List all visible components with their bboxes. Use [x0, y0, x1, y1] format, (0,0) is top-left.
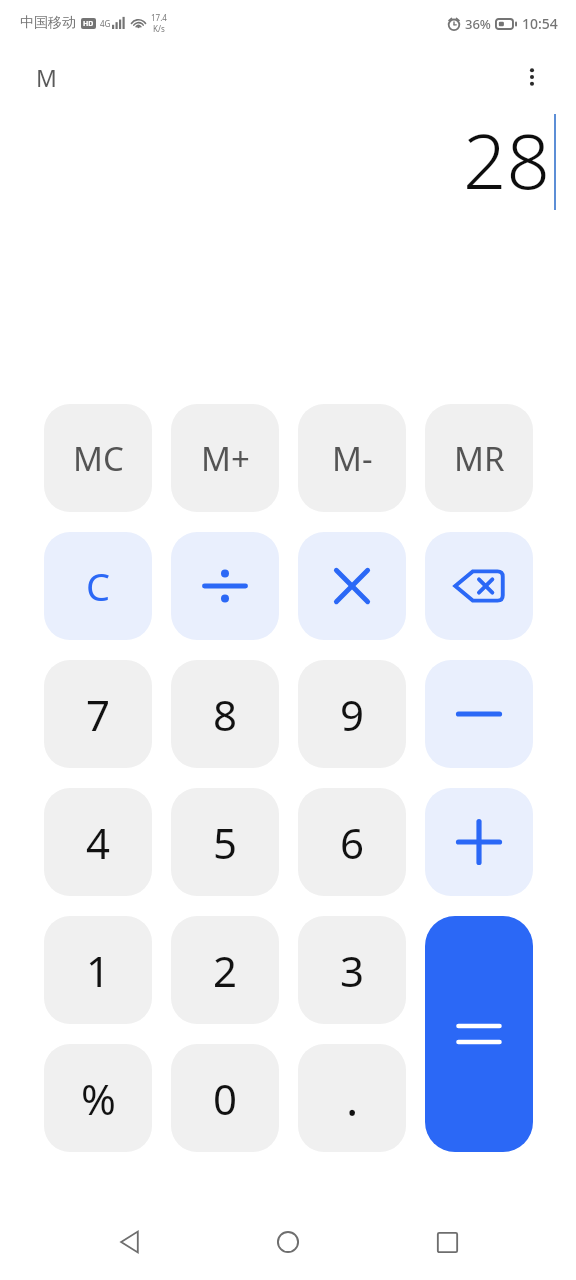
button[interactable]: Recents: [418, 1213, 476, 1271]
staticText: 8: [213, 686, 238, 743]
button[interactable]: M-: [298, 404, 406, 512]
staticText: 10:54: [522, 14, 558, 33]
staticText: 4G: [100, 18, 111, 29]
button[interactable]: Equals: [425, 916, 533, 1152]
staticText: 2: [213, 942, 238, 999]
staticText: M-: [332, 436, 373, 481]
button[interactable]: Divide: [171, 532, 279, 640]
button[interactable]: 1: [44, 916, 152, 1024]
button[interactable]: M: [30, 56, 63, 99]
button[interactable]: Backspace: [425, 532, 533, 640]
button[interactable]: More options: [508, 53, 556, 101]
button[interactable]: 4: [44, 788, 152, 896]
staticText: 9: [340, 686, 365, 743]
staticText: HD: [83, 19, 94, 29]
staticText: 28: [463, 108, 550, 212]
button[interactable]: Home: [259, 1213, 317, 1271]
button[interactable]: Plus: [425, 788, 533, 896]
button[interactable]: MR: [425, 404, 533, 512]
staticText: C: [86, 560, 111, 612]
staticText: MC: [73, 436, 124, 481]
button[interactable]: 0: [171, 1044, 279, 1152]
button[interactable]: 7: [44, 660, 152, 768]
staticText: 6: [340, 814, 365, 871]
button[interactable]: 6: [298, 788, 406, 896]
staticText: 3: [340, 942, 365, 999]
staticText: 17.4: [151, 12, 167, 23]
button[interactable]: Back: [101, 1213, 159, 1271]
button[interactable]: Multiply: [298, 532, 406, 640]
staticText: 4: [86, 814, 111, 871]
staticText: 1: [86, 942, 111, 999]
button[interactable]: 2: [171, 916, 279, 1024]
staticText: 36%: [465, 15, 491, 33]
button[interactable]: 8: [171, 660, 279, 768]
button[interactable]: 5: [171, 788, 279, 896]
button[interactable]: C: [44, 532, 152, 640]
button[interactable]: %: [44, 1044, 152, 1152]
button[interactable]: 9: [298, 660, 406, 768]
staticText: M+: [201, 436, 250, 481]
staticText: 0: [213, 1070, 238, 1127]
staticText: K/s: [153, 23, 165, 34]
staticText: M: [36, 62, 57, 93]
staticText: %: [81, 1070, 116, 1127]
button[interactable]: M+: [171, 404, 279, 512]
staticText: 中国移动: [20, 14, 76, 32]
staticText: .: [346, 1067, 359, 1130]
staticText: 5: [213, 814, 238, 871]
button[interactable]: 3: [298, 916, 406, 1024]
button[interactable]: .: [298, 1044, 406, 1152]
staticText: 7: [86, 686, 111, 743]
button[interactable]: Minus: [425, 660, 533, 768]
button[interactable]: MC: [44, 404, 152, 512]
staticText: MR: [454, 436, 505, 481]
